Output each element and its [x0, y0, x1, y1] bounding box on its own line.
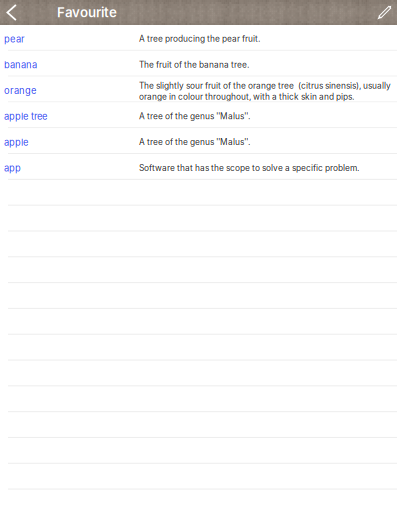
staticText: The fruit of the banana tree.: [139, 60, 249, 70]
button[interactable]: Edit: [372, 0, 396, 25]
staticText: Software that has the scope to solve a s…: [139, 163, 359, 173]
staticText: Favourite: [57, 4, 117, 20]
staticText: orange: [4, 85, 36, 96]
button[interactable]: Software that has the scope to solve a s…: [0, 154, 397, 180]
staticText: banana: [4, 59, 37, 70]
staticText: A tree producing the pear fruit.: [139, 34, 260, 44]
button[interactable]: A tree producing the pear fruit.: [0, 25, 397, 51]
button[interactable]: Back: [0, 0, 24, 25]
staticText: apple tree: [4, 111, 47, 122]
button[interactable]: A tree of the genus ''Malus''.: [0, 128, 397, 154]
staticText: pear: [4, 33, 25, 45]
staticText: apple: [4, 137, 28, 148]
staticText: A tree of the genus ''Malus''.: [139, 137, 250, 147]
button[interactable]: The slightly sour fruit of the orange tr…: [0, 77, 397, 102]
button[interactable]: The fruit of the banana tree.: [0, 51, 397, 77]
button[interactable]: A tree of the genus ''Malus''.: [0, 102, 397, 128]
staticText: The slightly sour fruit of the orange tr…: [139, 81, 391, 91]
staticText: orange in colour throughout, with a thic…: [139, 92, 354, 102]
staticText: app: [4, 162, 21, 174]
staticText: A tree of the genus ''Malus''.: [139, 111, 250, 121]
